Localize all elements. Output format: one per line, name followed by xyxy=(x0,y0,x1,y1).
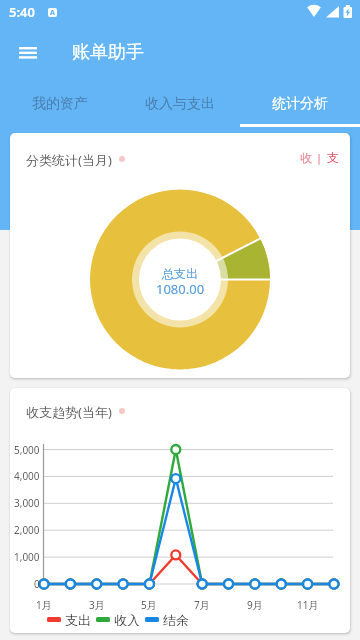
staticText: 3,000 xyxy=(14,496,40,508)
button[interactable]: 收入与支出 xyxy=(120,80,240,127)
staticText: 结余 xyxy=(163,612,189,626)
staticText: 0 xyxy=(34,577,40,589)
staticText: 2,000 xyxy=(14,523,40,535)
button[interactable] xyxy=(12,39,44,67)
staticText: 5,000 xyxy=(14,443,40,455)
staticText: 支出 xyxy=(65,612,91,626)
staticText: 1,000 xyxy=(14,550,40,562)
staticText: 9月 xyxy=(247,598,263,611)
staticText: 统计分析 xyxy=(272,95,328,113)
staticText: 7月 xyxy=(194,598,210,611)
staticText: | xyxy=(316,150,323,165)
staticText: 收支趋势(当年) xyxy=(26,403,112,421)
button[interactable]: 我的资产 xyxy=(0,80,120,127)
staticText: 支 xyxy=(327,150,339,165)
staticText: 5月 xyxy=(141,598,157,611)
staticText: 收入与支出 xyxy=(145,95,215,113)
staticText: A xyxy=(50,8,55,17)
button[interactable]: 收 xyxy=(300,146,339,168)
staticText: 3月 xyxy=(89,598,105,611)
staticText: 收入 xyxy=(114,612,140,626)
staticText: 我的资产 xyxy=(32,95,88,113)
staticText: 账单助手 xyxy=(72,41,144,64)
button[interactable]: 统计分析 xyxy=(240,80,360,127)
staticText: 收 xyxy=(300,150,312,165)
staticText: 5:40 xyxy=(9,3,35,21)
staticText: 1080.00 xyxy=(156,280,205,296)
staticText: 4,000 xyxy=(14,469,40,481)
staticText: 分类统计(当月) xyxy=(26,151,112,169)
staticText: 11月 xyxy=(297,598,319,611)
staticText: 总支出 xyxy=(162,266,198,281)
staticText: 1月 xyxy=(36,598,52,611)
